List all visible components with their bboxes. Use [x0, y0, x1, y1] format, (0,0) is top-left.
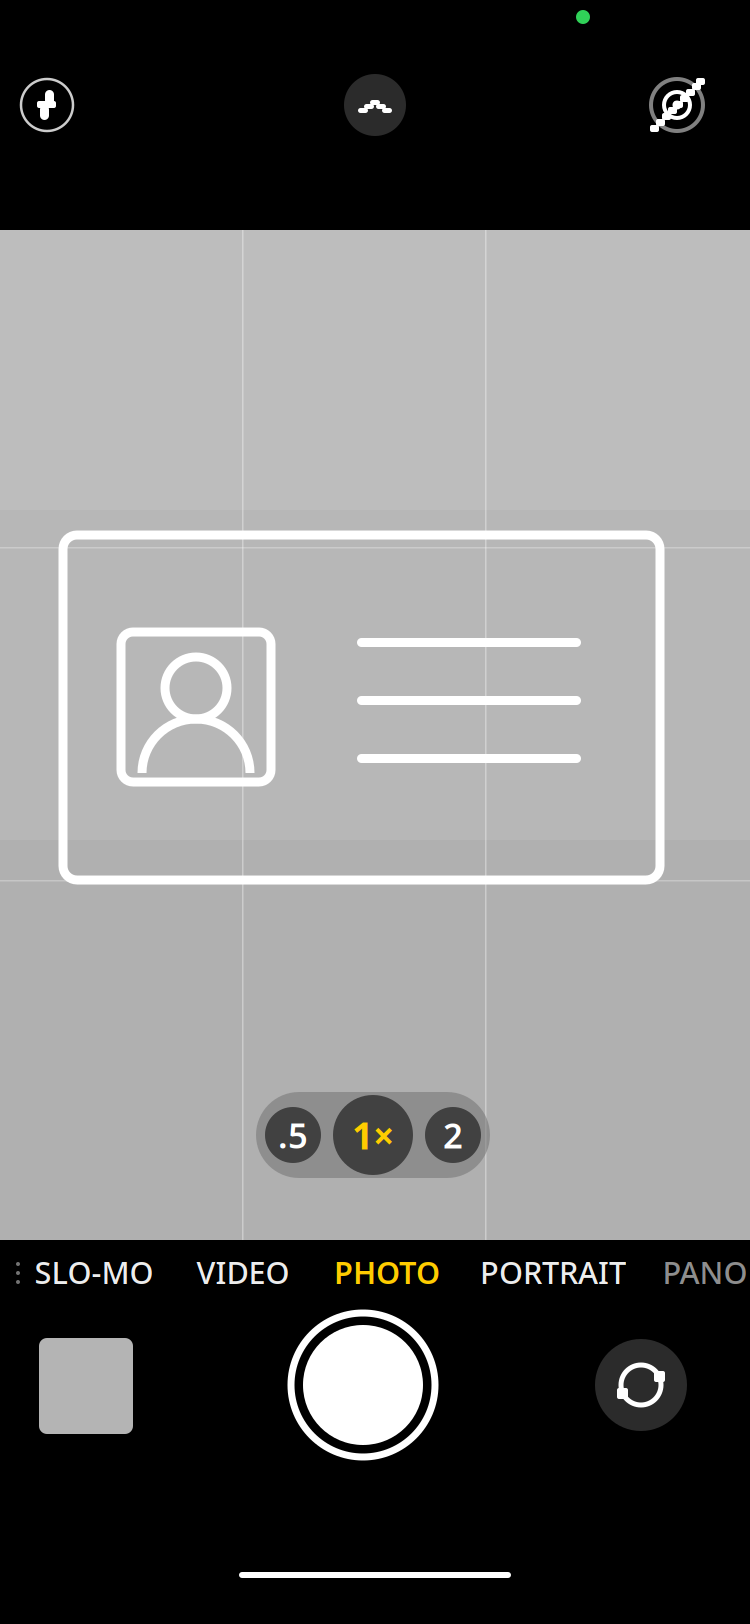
staticText: PORTRAIT [480, 1252, 626, 1292]
button[interactable]: PORTRAIT [461, 1242, 645, 1302]
staticText: 1× [352, 1110, 394, 1160]
button[interactable]: Photo Library [39, 1338, 133, 1434]
button[interactable]: Take Photo [287, 1309, 439, 1461]
staticText: .5 [278, 1112, 308, 1158]
staticText: PHOTO [334, 1252, 440, 1292]
button[interactable]: 1× [330, 1092, 416, 1178]
staticText: PANO [662, 1252, 747, 1292]
button[interactable]: Live Photo Off [632, 60, 722, 150]
button[interactable]: VIDEO [173, 1242, 313, 1302]
staticText: VIDEO [196, 1252, 289, 1292]
button[interactable]: PANO [645, 1242, 750, 1302]
button[interactable]: 2 [416, 1096, 490, 1174]
staticText: 2 [443, 1112, 463, 1158]
button[interactable]: PHOTO [313, 1242, 461, 1302]
staticText: SLO-MO [34, 1252, 153, 1292]
button[interactable]: SLO-MO [15, 1242, 173, 1302]
button[interactable]: .5 [256, 1096, 330, 1174]
button[interactable]: Switch Camera [595, 1339, 687, 1431]
button[interactable]: Camera Controls [330, 60, 420, 150]
button[interactable]: Flash [2, 60, 92, 150]
